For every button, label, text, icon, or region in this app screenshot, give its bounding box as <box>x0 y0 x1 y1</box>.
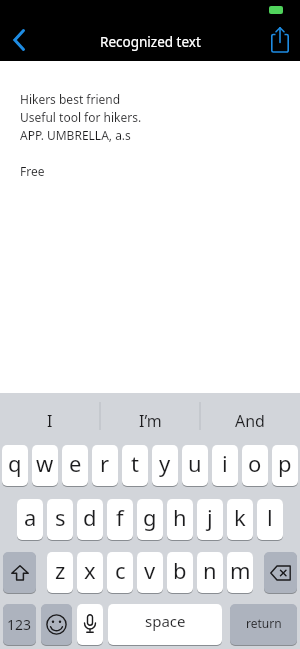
button[interactable]: j <box>197 499 223 540</box>
button[interactable]: f <box>107 499 133 540</box>
staticText: r <box>100 448 110 478</box>
staticText: a <box>24 502 37 532</box>
button[interactable]: r <box>92 445 118 486</box>
staticText: e <box>69 448 82 478</box>
button[interactable]: 123 <box>3 604 36 645</box>
staticText: b <box>173 555 187 585</box>
button[interactable]: t <box>122 445 148 486</box>
staticText: c <box>115 555 126 585</box>
button[interactable]: I <box>0 405 100 436</box>
button[interactable]: h <box>167 499 193 540</box>
staticText: d <box>83 502 97 532</box>
button[interactable]: k <box>227 499 253 540</box>
staticText: m <box>230 555 251 585</box>
staticText: f <box>116 502 124 532</box>
button[interactable]: o <box>242 445 268 486</box>
staticText: q <box>8 448 22 478</box>
button[interactable]: And <box>200 405 300 436</box>
button[interactable]: w <box>32 445 58 486</box>
staticText: v <box>144 555 156 585</box>
button[interactable]: g <box>137 499 163 540</box>
button[interactable] <box>9 26 29 54</box>
staticText: h <box>173 502 187 532</box>
button[interactable]: s <box>47 499 73 540</box>
button[interactable] <box>77 604 103 645</box>
button[interactable]: space <box>108 604 222 645</box>
staticText: space <box>145 611 186 631</box>
staticText: return <box>246 615 282 631</box>
button[interactable]: n <box>197 552 223 593</box>
staticText: t <box>131 448 139 478</box>
staticText: g <box>143 502 157 532</box>
staticText: x <box>84 555 96 585</box>
button[interactable]: z <box>47 552 73 593</box>
button[interactable]: m <box>227 552 253 593</box>
button[interactable]: a <box>17 499 43 540</box>
staticText: n <box>203 555 217 585</box>
staticText: k <box>234 502 246 532</box>
staticText: s <box>55 502 66 532</box>
staticText: u <box>188 448 202 478</box>
staticText: I’m <box>139 410 162 432</box>
button[interactable]: d <box>77 499 103 540</box>
button[interactable]: q <box>2 445 28 486</box>
button[interactable]: u <box>182 445 208 486</box>
staticText: i <box>222 448 228 478</box>
button[interactable]: l <box>257 499 283 540</box>
staticText: Recognized text <box>100 33 201 51</box>
button[interactable] <box>3 552 36 593</box>
button[interactable]: y <box>152 445 178 486</box>
button[interactable]: x <box>77 552 103 593</box>
staticText: l <box>267 502 273 532</box>
staticText: o <box>248 448 262 478</box>
button[interactable]: c <box>107 552 133 593</box>
button[interactable]: I’m <box>100 405 200 436</box>
staticText: w <box>36 448 54 478</box>
staticText: z <box>55 555 66 585</box>
button[interactable]: v <box>137 552 163 593</box>
staticText: 123 <box>7 615 32 634</box>
staticText: j <box>207 502 213 532</box>
staticText: p <box>278 448 292 478</box>
button[interactable] <box>264 552 297 593</box>
staticText: I <box>47 410 53 432</box>
button[interactable] <box>41 604 72 645</box>
staticText: Hikers best friend Useful tool for hiker… <box>20 91 142 179</box>
button[interactable]: return <box>230 604 297 645</box>
staticText: y <box>159 448 171 478</box>
button[interactable]: b <box>167 552 193 593</box>
button[interactable] <box>266 24 294 56</box>
button[interactable]: e <box>62 445 88 486</box>
staticText: And <box>235 410 265 432</box>
button[interactable]: p <box>272 445 298 486</box>
button[interactable]: i <box>212 445 238 486</box>
